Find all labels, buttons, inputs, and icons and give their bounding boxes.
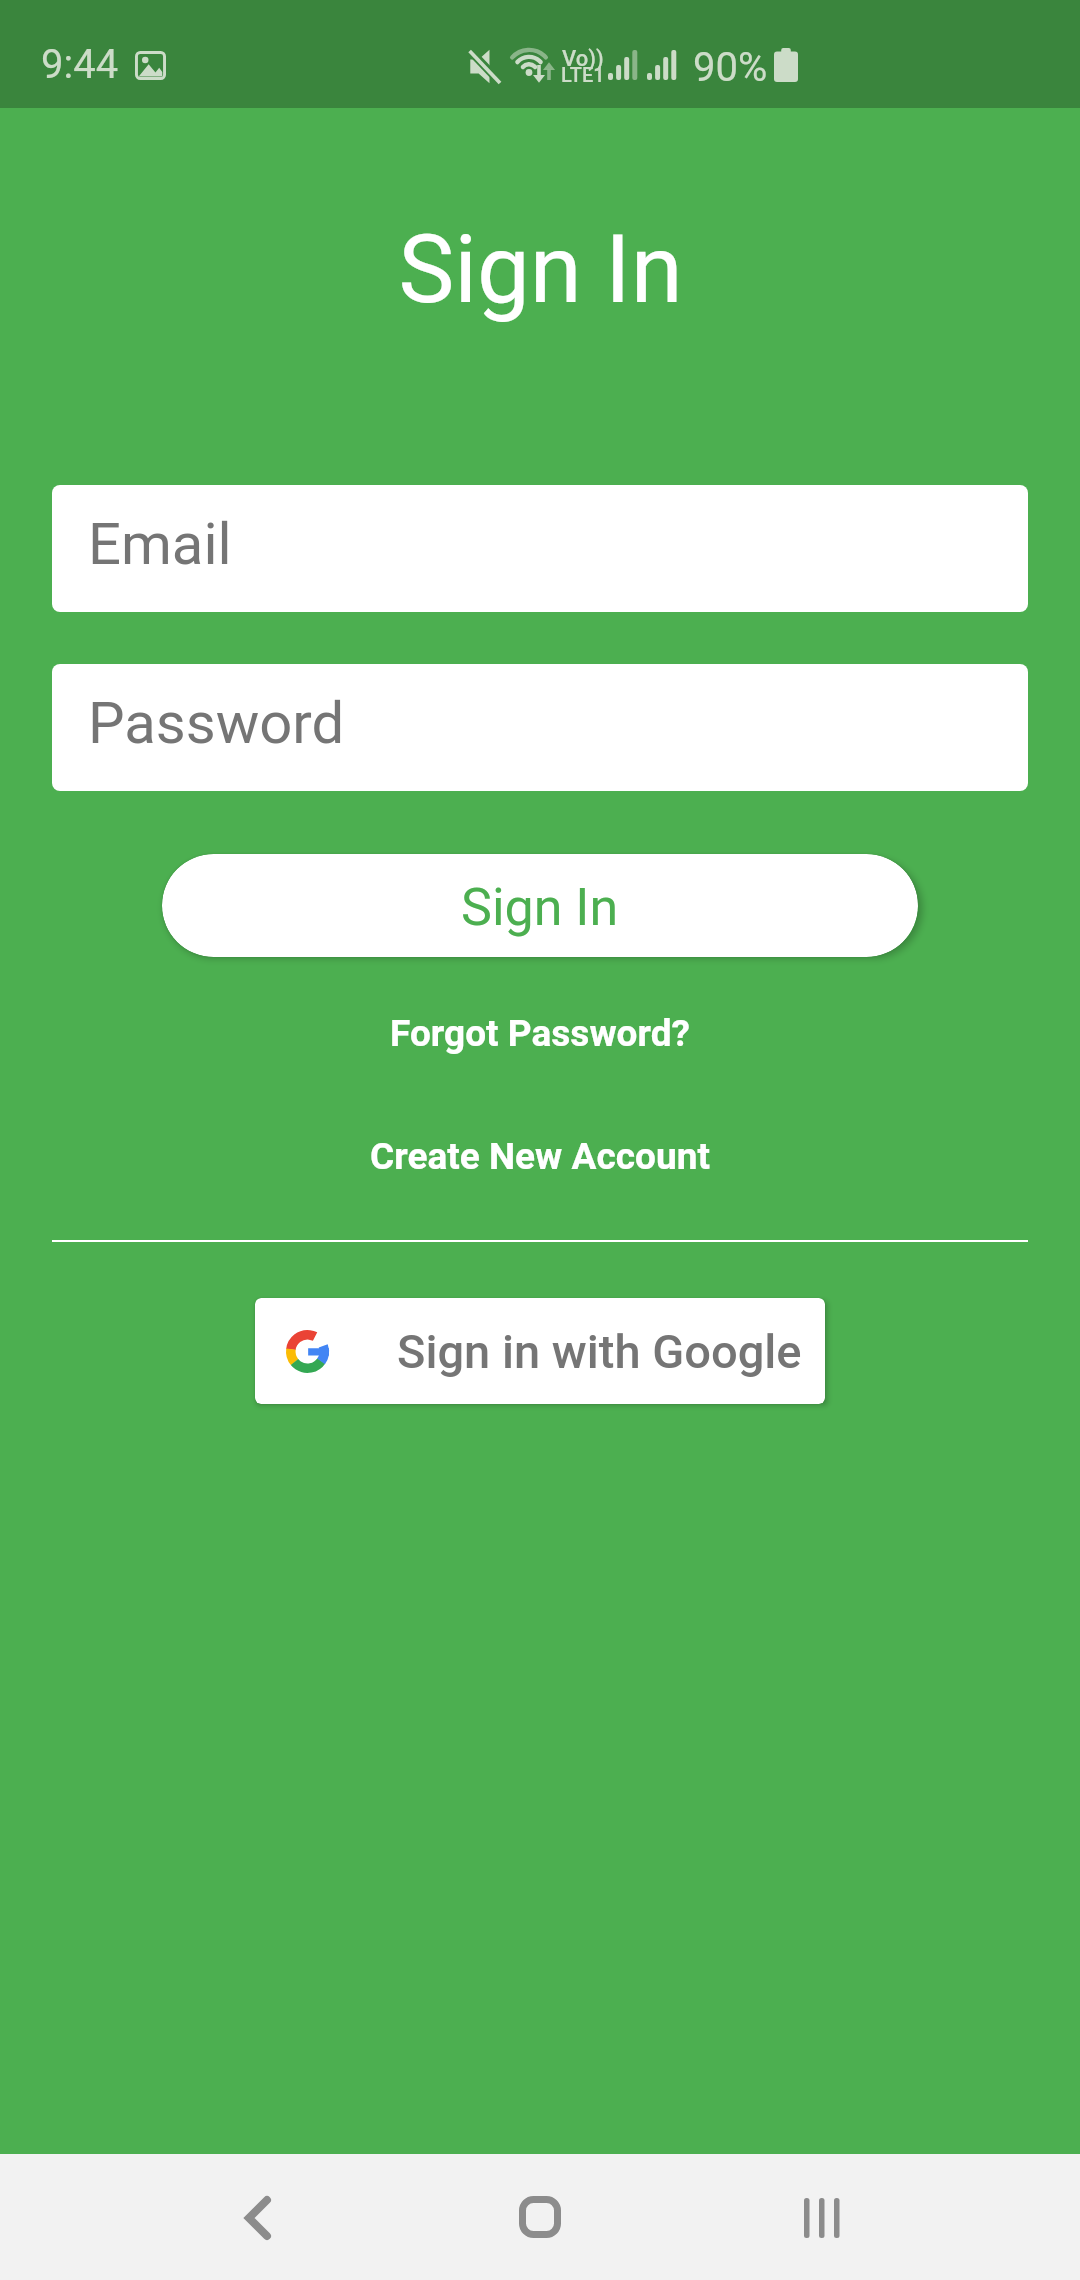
staticText: Sign in with Google bbox=[397, 1324, 802, 1379]
button[interactable]: Sign In bbox=[162, 854, 918, 957]
staticText: 90% bbox=[693, 44, 768, 91]
staticText: Create New Account bbox=[370, 1135, 710, 1178]
staticText: Forgot Password? bbox=[390, 1012, 690, 1055]
button[interactable]: Forgot Password? bbox=[390, 1012, 690, 1055]
button[interactable]: Back bbox=[210, 2170, 306, 2266]
staticText: Password bbox=[88, 689, 345, 757]
staticText: 9:44 bbox=[41, 41, 119, 88]
button[interactable]: Sign in with Google bbox=[255, 1298, 825, 1404]
staticText: Sign In bbox=[398, 215, 683, 325]
button[interactable]: Recent apps bbox=[774, 2170, 870, 2266]
staticText: LTE1 bbox=[561, 63, 605, 86]
button[interactable]: Create New Account bbox=[370, 1135, 710, 1178]
staticText: Sign In bbox=[461, 877, 619, 938]
button[interactable]: Password bbox=[52, 664, 1028, 791]
button[interactable]: Email bbox=[52, 485, 1028, 612]
button[interactable]: Home bbox=[492, 2169, 588, 2265]
staticText: Email bbox=[88, 510, 232, 578]
staticText: Vo)) bbox=[562, 46, 604, 72]
